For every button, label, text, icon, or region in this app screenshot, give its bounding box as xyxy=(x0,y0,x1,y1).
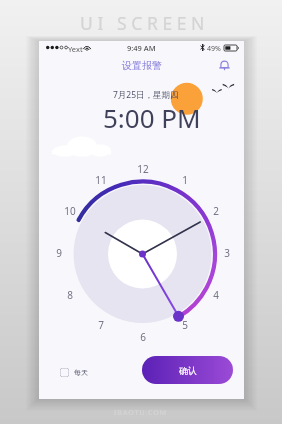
staticText: 11 xyxy=(95,173,107,187)
staticText: 3 xyxy=(224,246,230,260)
staticText: 9 xyxy=(56,246,62,260)
staticText: 5:00 PM xyxy=(103,100,201,135)
staticText: 12 xyxy=(137,162,149,176)
button[interactable]: 每天 xyxy=(58,366,90,379)
staticText: Yext xyxy=(68,44,83,54)
staticText: 8 xyxy=(67,288,73,302)
staticText: 每天 xyxy=(74,368,88,377)
staticText: 7 xyxy=(98,318,104,332)
button[interactable]: Alarm xyxy=(204,55,244,75)
staticText: 设置报警 xyxy=(122,59,162,72)
staticText: 7月25日，星期四 xyxy=(113,89,179,101)
staticText: 5 xyxy=(182,318,188,332)
button[interactable]: 确认 xyxy=(142,356,233,384)
staticText: UI SCREEN xyxy=(80,11,209,35)
staticText: 10 xyxy=(64,204,76,218)
staticText: 1 xyxy=(182,173,188,187)
staticText: 4 xyxy=(213,288,219,302)
staticText: 2 xyxy=(213,204,219,218)
staticText: IBAOTU.COM xyxy=(114,408,168,418)
staticText: 9:49 AM xyxy=(127,43,156,53)
staticText: 6 xyxy=(140,330,146,344)
staticText: 确认 xyxy=(179,365,197,376)
staticText: 49% xyxy=(207,44,221,54)
